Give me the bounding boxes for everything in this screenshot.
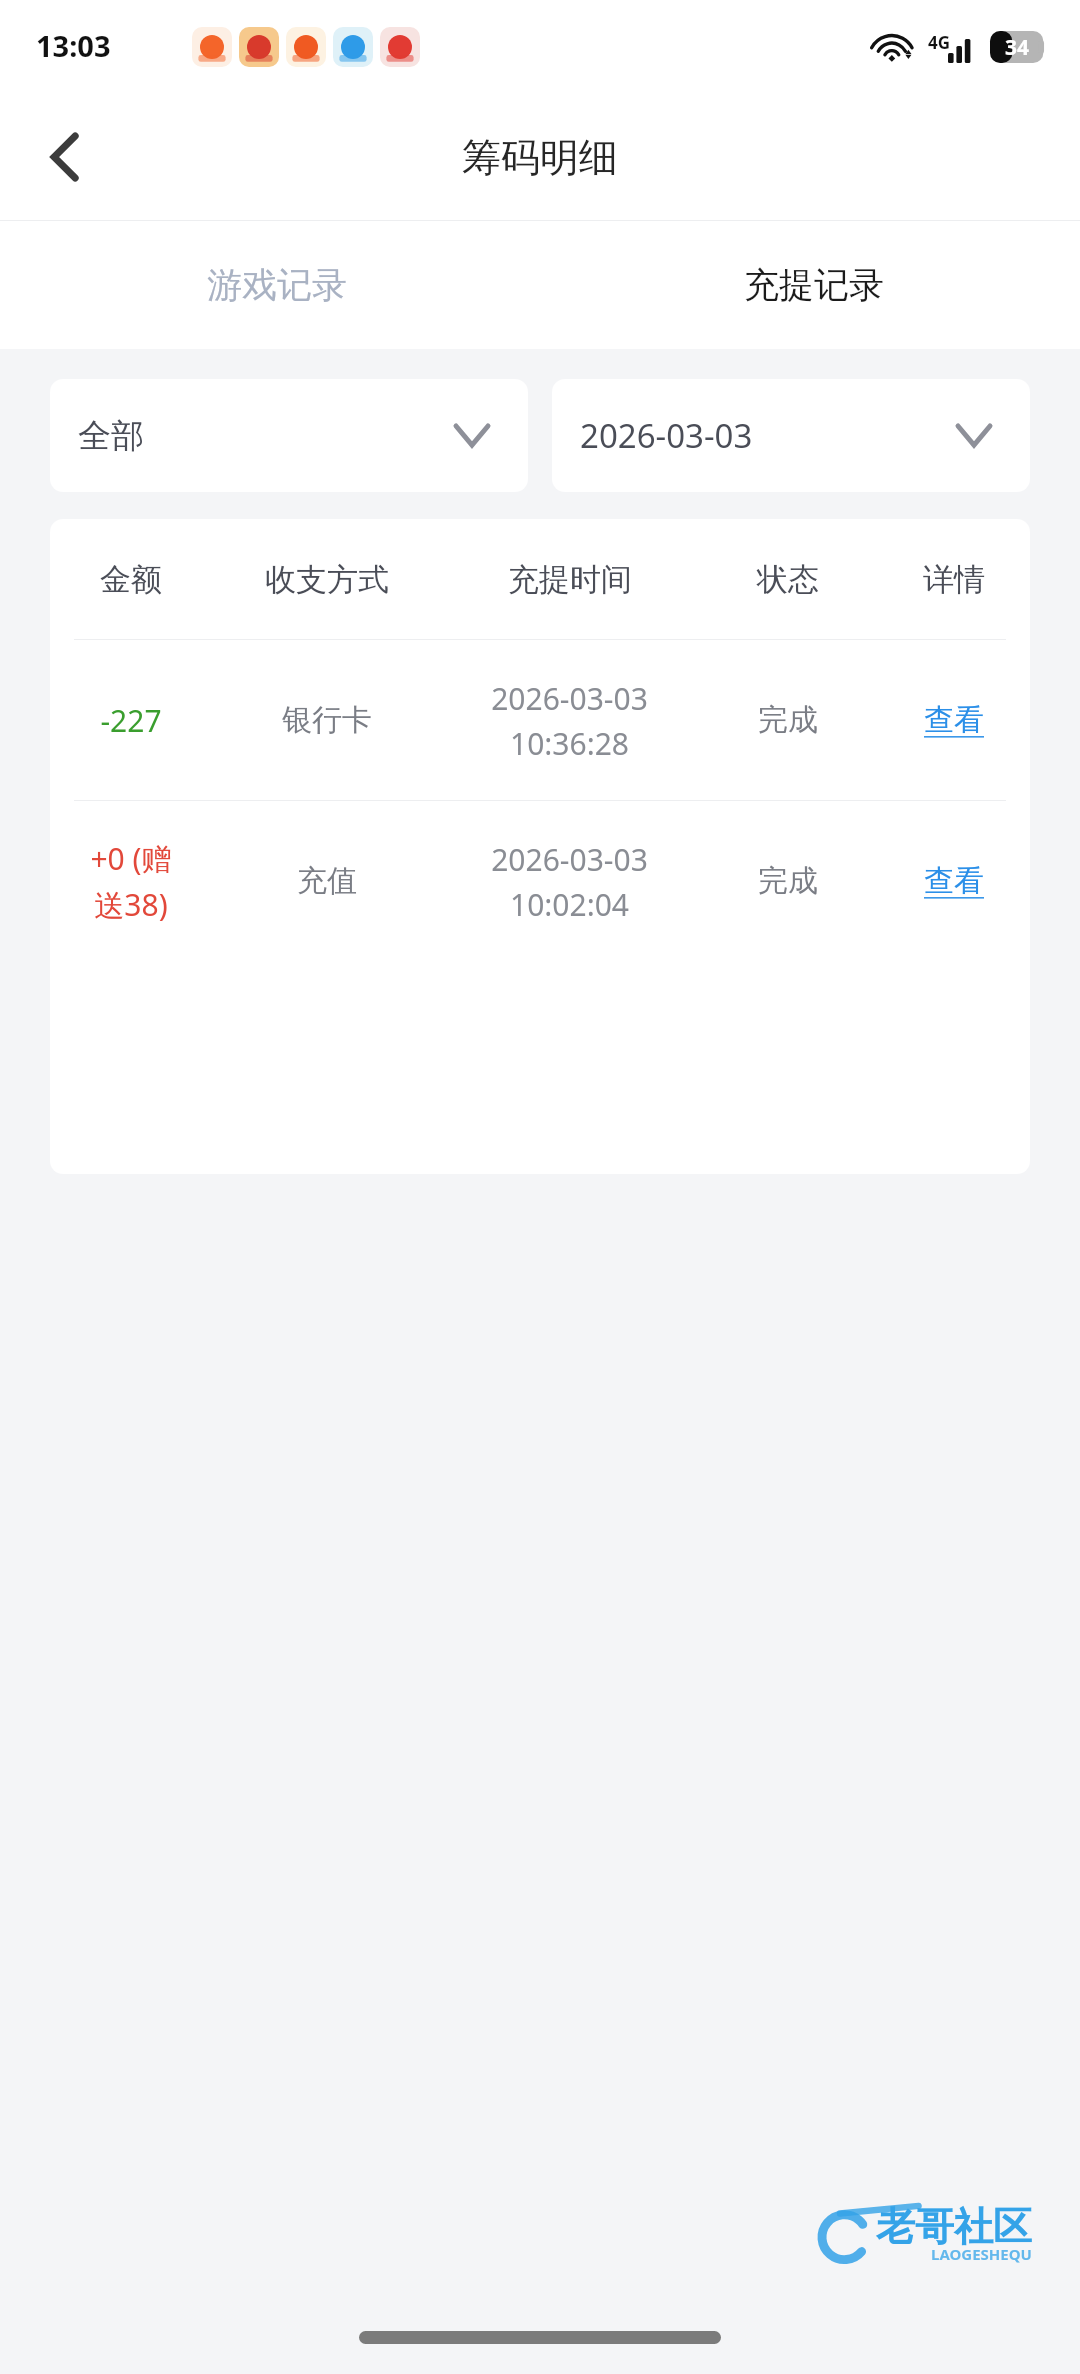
- button[interactable]: 2026-03-03: [552, 379, 1030, 492]
- staticText: 老哥社区: [876, 2202, 1032, 2251]
- button[interactable]: 充提记录: [540, 221, 1080, 349]
- staticText: 全部: [78, 415, 144, 457]
- staticText: 筹码明细: [462, 133, 618, 182]
- staticText: 2026-03-03 10:02:04: [491, 839, 648, 924]
- button[interactable]: Back: [22, 114, 108, 200]
- staticText: 状态: [757, 560, 819, 599]
- staticText: 查看: [924, 862, 984, 900]
- staticText: 充提记录: [744, 263, 884, 307]
- staticText: 游戏记录: [207, 263, 347, 307]
- staticText: +0 (赠 送38): [90, 838, 172, 924]
- staticText: 收支方式: [265, 560, 389, 599]
- staticText: 完成: [758, 701, 818, 739]
- staticText: 4G: [928, 31, 951, 54]
- staticText: -227: [100, 700, 162, 741]
- staticText: 2026-03-03 10:36:28: [491, 678, 648, 763]
- staticText: 充值: [297, 862, 357, 900]
- staticText: 银行卡: [282, 701, 372, 739]
- button[interactable]: 游戏记录: [0, 221, 540, 349]
- button[interactable]: 查看: [912, 691, 996, 749]
- staticText: 34: [1005, 33, 1030, 62]
- staticText: 查看: [924, 701, 984, 739]
- staticText: 2026-03-03: [580, 413, 753, 458]
- staticText: LAOGESHEQU: [931, 2244, 1032, 2264]
- staticText: 13:03: [36, 26, 111, 65]
- staticText: 详情: [923, 560, 985, 599]
- staticText: 完成: [758, 862, 818, 900]
- staticText: 金额: [100, 560, 162, 599]
- button[interactable]: 全部: [50, 379, 528, 492]
- staticText: 充提时间: [508, 560, 632, 599]
- button[interactable]: 查看: [912, 852, 996, 910]
